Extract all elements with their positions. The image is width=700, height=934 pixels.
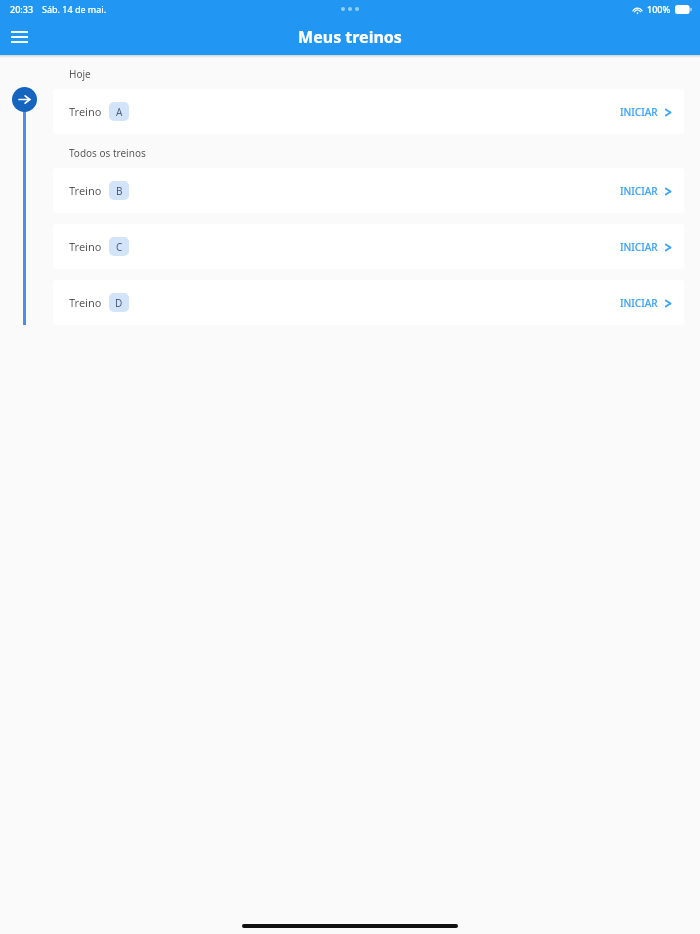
staticText: 20:33 bbox=[10, 3, 34, 15]
staticText: INICIAR bbox=[620, 184, 658, 198]
staticText: B bbox=[116, 184, 123, 198]
button[interactable]: INICIAR bbox=[608, 95, 684, 129]
staticText: 100% bbox=[647, 3, 671, 15]
button[interactable]: Menu bbox=[3, 20, 36, 53]
staticText: Hoje bbox=[69, 67, 91, 81]
staticText: C bbox=[116, 240, 123, 254]
staticText: Treino bbox=[69, 183, 102, 198]
button[interactable]: Treino bbox=[53, 89, 684, 134]
staticText: INICIAR bbox=[620, 105, 658, 119]
button[interactable]: INICIAR bbox=[608, 230, 684, 264]
button[interactable]: Treino bbox=[53, 224, 684, 269]
button[interactable]: INICIAR bbox=[608, 174, 684, 208]
staticText: D bbox=[115, 296, 123, 310]
staticText: Meus treinos bbox=[298, 26, 402, 48]
staticText: Treino bbox=[69, 104, 102, 119]
staticText: Sáb. 14 de mai. bbox=[42, 3, 107, 15]
staticText: INICIAR bbox=[620, 296, 658, 310]
button[interactable]: Avançar bbox=[12, 87, 37, 112]
button[interactable]: Treino bbox=[53, 168, 684, 213]
staticText: Todos os treinos bbox=[69, 146, 146, 160]
staticText: Treino bbox=[69, 239, 102, 254]
staticText: Treino bbox=[69, 295, 102, 310]
button[interactable]: INICIAR bbox=[608, 286, 684, 320]
staticText: INICIAR bbox=[620, 240, 658, 254]
staticText: A bbox=[116, 105, 123, 119]
button[interactable]: Treino bbox=[53, 280, 684, 325]
